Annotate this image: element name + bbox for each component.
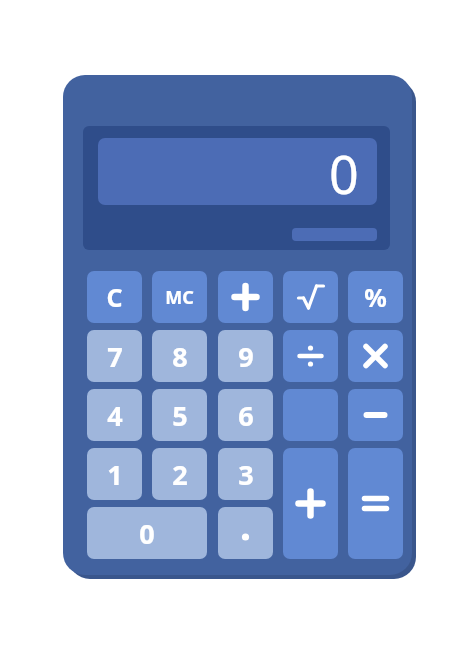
button[interactable]: Decimal point — [218, 507, 273, 559]
button[interactable]: C — [87, 271, 142, 323]
button[interactable]: 1 — [87, 448, 142, 500]
button[interactable]: 3 — [218, 448, 273, 500]
button[interactable]: Multiply — [348, 330, 403, 382]
staticText: 6 — [238, 397, 254, 434]
button[interactable]: % — [348, 271, 403, 323]
button[interactable]: Minus — [348, 389, 403, 441]
staticText: C — [106, 280, 123, 314]
staticText: 3 — [238, 456, 254, 493]
button[interactable]: Equals — [348, 448, 403, 559]
staticText: % — [364, 280, 387, 314]
staticText: 9 — [238, 338, 254, 375]
button[interactable]: 6 — [218, 389, 273, 441]
staticText: 8 — [172, 338, 188, 375]
button[interactable]: Blank — [283, 389, 338, 441]
staticText: 2 — [172, 456, 188, 493]
button[interactable]: Divide — [283, 330, 338, 382]
button[interactable]: Square root — [283, 271, 338, 323]
staticText: 0 — [329, 138, 359, 205]
staticText: MC — [165, 285, 194, 310]
button[interactable]: 5 — [152, 389, 207, 441]
button[interactable]: MC — [152, 271, 207, 323]
button[interactable]: 7 — [87, 330, 142, 382]
staticText: 5 — [172, 397, 188, 434]
button[interactable]: 2 — [152, 448, 207, 500]
button[interactable]: Plus — [218, 271, 273, 323]
button[interactable]: 0 — [87, 507, 207, 559]
button[interactable]: 8 — [152, 330, 207, 382]
staticText: 4 — [107, 397, 123, 434]
button[interactable]: Plus — [283, 448, 338, 559]
staticText: 0 — [139, 515, 155, 552]
button[interactable]: 9 — [218, 330, 273, 382]
button[interactable]: 4 — [87, 389, 142, 441]
staticText: 1 — [107, 456, 123, 493]
staticText: 7 — [107, 338, 123, 375]
